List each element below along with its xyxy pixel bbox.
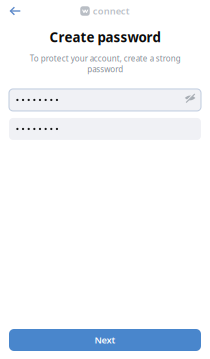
- staticText: Create password: [49, 28, 160, 46]
- staticText: connect: [93, 5, 130, 17]
- staticText: To protect your account, create a strong…: [29, 53, 180, 74]
- button[interactable]: Show password: [184, 95, 196, 105]
- button[interactable]: Back: [0, 0, 28, 21]
- staticText: Next: [94, 334, 115, 346]
- button[interactable]: Next: [9, 329, 201, 351]
